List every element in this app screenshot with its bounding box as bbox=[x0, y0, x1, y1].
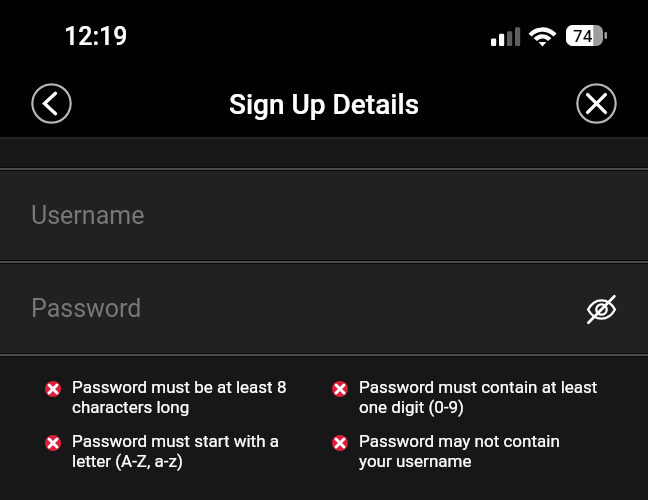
staticText: Username bbox=[31, 201, 145, 230]
staticText: Password bbox=[31, 294, 142, 323]
button[interactable]: Close bbox=[576, 83, 617, 124]
staticText: Password must start with a letter (A-Z, … bbox=[72, 431, 279, 471]
staticText: Password must be at least 8 characters l… bbox=[72, 377, 287, 417]
button[interactable]: Show password bbox=[579, 287, 623, 331]
button[interactable]: Back bbox=[31, 83, 72, 124]
staticText: 12:19 bbox=[64, 22, 128, 51]
staticText: Password may not contain your username bbox=[359, 431, 560, 471]
staticText: Password must contain at least one digit… bbox=[359, 377, 598, 417]
staticText: 74 bbox=[573, 26, 593, 46]
button[interactable]: Username bbox=[0, 171, 648, 260]
staticText: Sign Up Details bbox=[229, 88, 420, 121]
button[interactable]: Password bbox=[0, 264, 648, 353]
